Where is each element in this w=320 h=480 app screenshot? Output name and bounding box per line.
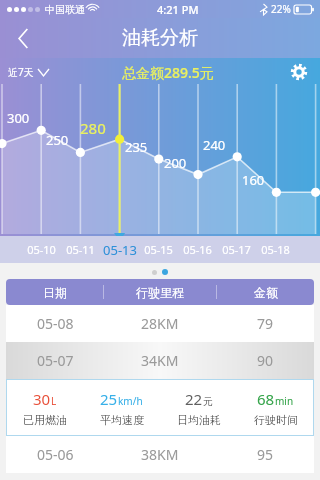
staticText: 05-18 bbox=[261, 242, 290, 257]
staticText: 22% bbox=[271, 2, 291, 16]
staticText: 05-16 bbox=[183, 242, 212, 257]
staticText: km/h bbox=[118, 394, 143, 408]
staticText: 280 bbox=[80, 118, 106, 138]
staticText: 已用燃油 bbox=[23, 413, 67, 427]
staticText: 34KM bbox=[141, 351, 179, 370]
staticText: 日均油耗 bbox=[177, 413, 221, 427]
button[interactable]: 30 bbox=[6, 379, 314, 436]
staticText: 行驶里程 bbox=[136, 285, 184, 300]
staticText: 05-10 bbox=[27, 242, 56, 257]
staticText: 95 bbox=[257, 445, 274, 464]
staticText: 总金额289.5元 bbox=[122, 63, 214, 82]
staticText: 22 bbox=[185, 389, 203, 409]
staticText: 中国联通 bbox=[45, 3, 85, 16]
staticText: 240 bbox=[203, 136, 226, 154]
staticText: 30 bbox=[33, 389, 51, 409]
staticText: 25 bbox=[100, 389, 118, 409]
staticText: 68 bbox=[257, 389, 275, 409]
staticText: 05-06 bbox=[37, 445, 74, 464]
button[interactable]: 05-06 bbox=[6, 436, 314, 473]
staticText: 日期 bbox=[43, 285, 67, 300]
staticText: L bbox=[51, 394, 57, 408]
staticText: 行驶时间 bbox=[254, 413, 298, 427]
staticText: 05-13 bbox=[103, 241, 137, 259]
button[interactable]: Settings bbox=[288, 61, 310, 83]
staticText: 250 bbox=[46, 131, 69, 149]
staticText: 油耗分析 bbox=[122, 26, 198, 50]
staticText: 200 bbox=[164, 154, 187, 172]
staticText: 4:21 PM bbox=[157, 2, 199, 17]
button[interactable]: 05-07 bbox=[6, 342, 314, 379]
button[interactable]: 日期 bbox=[6, 279, 314, 305]
staticText: 05-17 bbox=[222, 242, 251, 257]
staticText: 05-15 bbox=[144, 242, 173, 257]
button[interactable]: 05-08 bbox=[6, 305, 314, 342]
button[interactable]: 近7天 bbox=[8, 65, 49, 79]
staticText: 05-07 bbox=[37, 351, 74, 370]
staticText: 05-08 bbox=[37, 314, 74, 333]
staticText: 28KM bbox=[141, 314, 179, 333]
staticText: 90 bbox=[257, 351, 274, 370]
staticText: 235 bbox=[125, 138, 148, 156]
staticText: 平均速度 bbox=[100, 413, 144, 427]
button[interactable]: Back bbox=[0, 18, 46, 58]
staticText: min bbox=[275, 394, 294, 408]
staticText: 300 bbox=[7, 109, 30, 127]
staticText: 38KM bbox=[141, 445, 179, 464]
staticText: 近7天 bbox=[8, 65, 34, 79]
staticText: 160 bbox=[242, 171, 265, 189]
staticText: 金额 bbox=[254, 285, 278, 300]
staticText: 05-11 bbox=[66, 242, 95, 257]
staticText: 元 bbox=[203, 395, 213, 408]
staticText: 79 bbox=[257, 314, 274, 333]
